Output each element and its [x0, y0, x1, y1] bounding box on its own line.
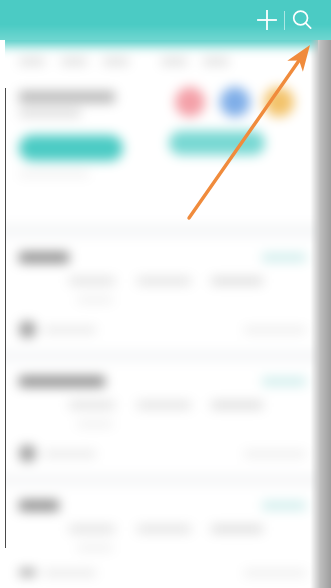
button[interactable]	[220, 87, 250, 117]
button[interactable]	[264, 87, 294, 117]
button[interactable]	[169, 131, 265, 155]
button[interactable]: Search	[285, 3, 319, 37]
button[interactable]	[19, 135, 123, 161]
button[interactable]	[5, 362, 318, 474]
button[interactable]	[5, 238, 318, 350]
button[interactable]	[5, 486, 318, 588]
button[interactable]: Add	[250, 3, 284, 37]
button[interactable]	[175, 87, 205, 117]
